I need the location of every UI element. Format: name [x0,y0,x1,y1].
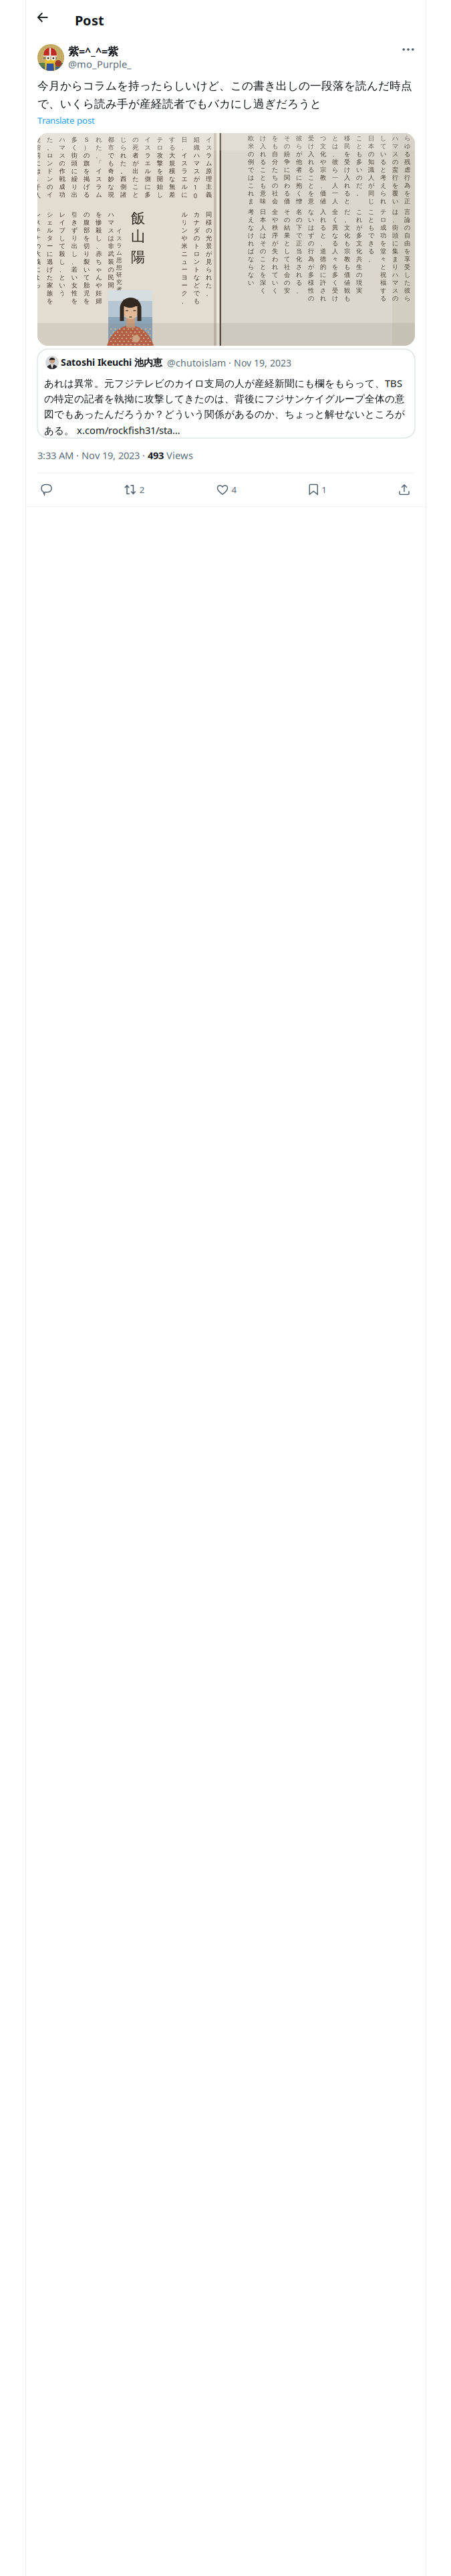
staticText: ハ マ ス の 作 戦 成 功 [59,136,66,199]
staticText: つ 文 化 や 宗 教 、 価 値 [320,134,327,205]
staticText: Satoshi Ikeuchi 池内恵 [61,356,162,369]
staticText: あれは異常。元フジテレビのカイロ支局の人が産経新聞にも欄をもらって、TBSの特定… [44,377,405,437]
staticText: 都 市 で も 奇 妙 な 現 [108,136,115,199]
staticText: じ ら れ た 。 西 側 諸 [120,136,127,199]
button[interactable]: Share [399,478,410,501]
staticText: 入 れ る と 、 道 徳 的 に 許 さ れ [320,208,327,302]
staticText: ら ゆ る 残 虐 行 為 を 正 [404,134,411,205]
staticText: カ ナ ダ の ト ロ ン ト な ど で も [194,211,200,305]
staticText: 全 や 秩 序 が 失 わ れ て い く [272,208,279,294]
staticText: 組 織 ハ マ ス が 1 0 [194,136,200,200]
button[interactable]: Back [33,7,53,27]
staticText: Views [164,449,193,462]
staticText: 多 く 街 頭 に 繰 り 出 [71,136,78,199]
staticText: こ れ が 多 文 化 共 生 の 現 実 [356,208,363,294]
staticText: 3:33 AM · Nov 19, 2023 · [37,449,148,462]
staticText: を も 自 分 た ち の 社 会 [272,134,279,205]
staticText: シ ェ ル タ ー に 逃 げ た 家 族 を [47,211,54,305]
staticText: と は 、 彼 ら 一 人 一 人 [332,134,339,205]
staticText: レ ス チ ナ の 大 義 に よ っ [35,211,41,289]
staticText: イ ス ラ ム 思 想 研 究 者 [116,227,122,293]
staticText: イ ス ラ ム 原 理 主 義 [206,136,212,199]
staticText: Post [75,11,104,29]
staticText: 移 民 を 受 け 入 れ る と [344,134,351,205]
staticText: 日 、 イ ス ラ エ ル に [181,136,188,199]
staticText: Ｓ ） の 旗 を 掲 げ る [84,136,90,199]
staticText: 受 け 入 れ る こ と を 意 [308,134,315,205]
staticText: こ と も 多 い の だ 。 [356,134,363,197]
staticText: 陽 [131,248,145,266]
staticText: @chutoislam · Nov 19, 2023 [167,356,291,369]
staticText: 同 様 の 光 景 が 見 ら れ た 。 [206,211,212,297]
button[interactable]: Reply [41,478,52,501]
button[interactable]: Satoshi Ikeuchi 池内恵 [37,349,415,438]
staticText: そ の 結 果 と し て 社 会 の 安 [284,208,291,294]
staticText: た 。 ロ ン ド ン の イ [47,136,54,199]
staticText: ま り 、 一 部 は 暴 徒 [22,136,29,199]
staticText: こ と も で き る 。 [368,208,375,263]
staticText: ハ マ ス は 非 武 装 の 民 間 人 [108,211,115,297]
staticText: 考 え な け れ ば な ら な い [248,208,255,287]
staticText: @mo_Purple_ [68,58,132,71]
staticText: 使 館 前 に は 5 千 人 [35,136,41,199]
button[interactable]: Translate post [37,114,95,126]
staticText: な い は ず の 行 為 が 多 様 性 の [308,208,315,302]
staticText: だ 。 文 化 も 宗 教 も 価 値 観 も [344,208,351,302]
staticText: そ の 紛 争 に 関 わ る 価 [284,134,291,205]
staticText: 493 [148,449,164,462]
staticText: レ イ プ し て 殺 し 、 と い う [59,211,66,297]
staticText: 彼 ら が 他 者 に 抱 く 憎 [296,134,303,205]
staticText: 日 本 人 は そ の こ と を 深 く [260,208,267,294]
staticText: ハ マ ス の 蛮 行 を 覆 い [392,134,399,205]
staticText: 4 [232,484,237,495]
staticText: ル リ ン や 米 ニ ュ ー ヨ ー ク 、 [181,211,188,305]
staticText: 日 本 の 知 識 人 が 同 じ [368,134,375,205]
staticText: の 腹 部 を 切 り 裂 い て 胎 児 を [84,211,90,305]
staticText: 全 く 異 な る 人 々 を 多 く 受 け [332,208,339,302]
staticText: れ た 。 「 イ ス ラ ム [96,136,102,199]
staticText: Translate post [37,114,95,126]
staticText: は 、 街 頭 に 集 ま り ハ マ ス の [392,208,399,302]
button[interactable]: More [398,41,418,58]
button[interactable]: Repost [124,478,145,501]
staticText: 1 [322,484,327,495]
staticText: 引 き ず り 出 し 、 若 い 女 性 を [71,211,78,305]
staticText: 紫=^_^=紫 [68,44,118,58]
staticText: 欧 米 の 例 で は こ れ ま [248,134,255,205]
staticText: テ ロ 成 功 を 堂 々 と 祝 福 す る [380,208,387,302]
staticText: の 死 者 が 出 た こ と [132,136,139,199]
staticText: す る 大 規 模 な 無 差 [169,136,176,199]
staticText: 言 論 の 自 由 を 享 受 し た 彼 ら [404,208,411,302]
staticText: し て い る と 考 え ら れ [380,134,387,205]
staticText: 名 の 下 で 正 当 化 さ れ る 。 [296,208,303,294]
staticText: 今月からコラムを持ったらしいけど、この書き出しの一段落を読んだ時点で、いくら読み… [37,79,412,111]
staticText: テ ロ 攻 撃 を 開 始 し [157,136,164,199]
staticText: を 惨 殺 し 、 赤 ち ゃ ん や 妊 婦 [96,211,102,305]
staticText: 2 [140,484,145,495]
button[interactable]: Like [217,478,237,501]
staticText: 飯 山 [131,209,145,245]
staticText: イ ス ラ エ ル 側 に 多 [145,136,151,199]
button[interactable]: Bookmark [309,478,327,501]
staticText: け 入 れ る こ と も 意 味 [260,134,267,205]
